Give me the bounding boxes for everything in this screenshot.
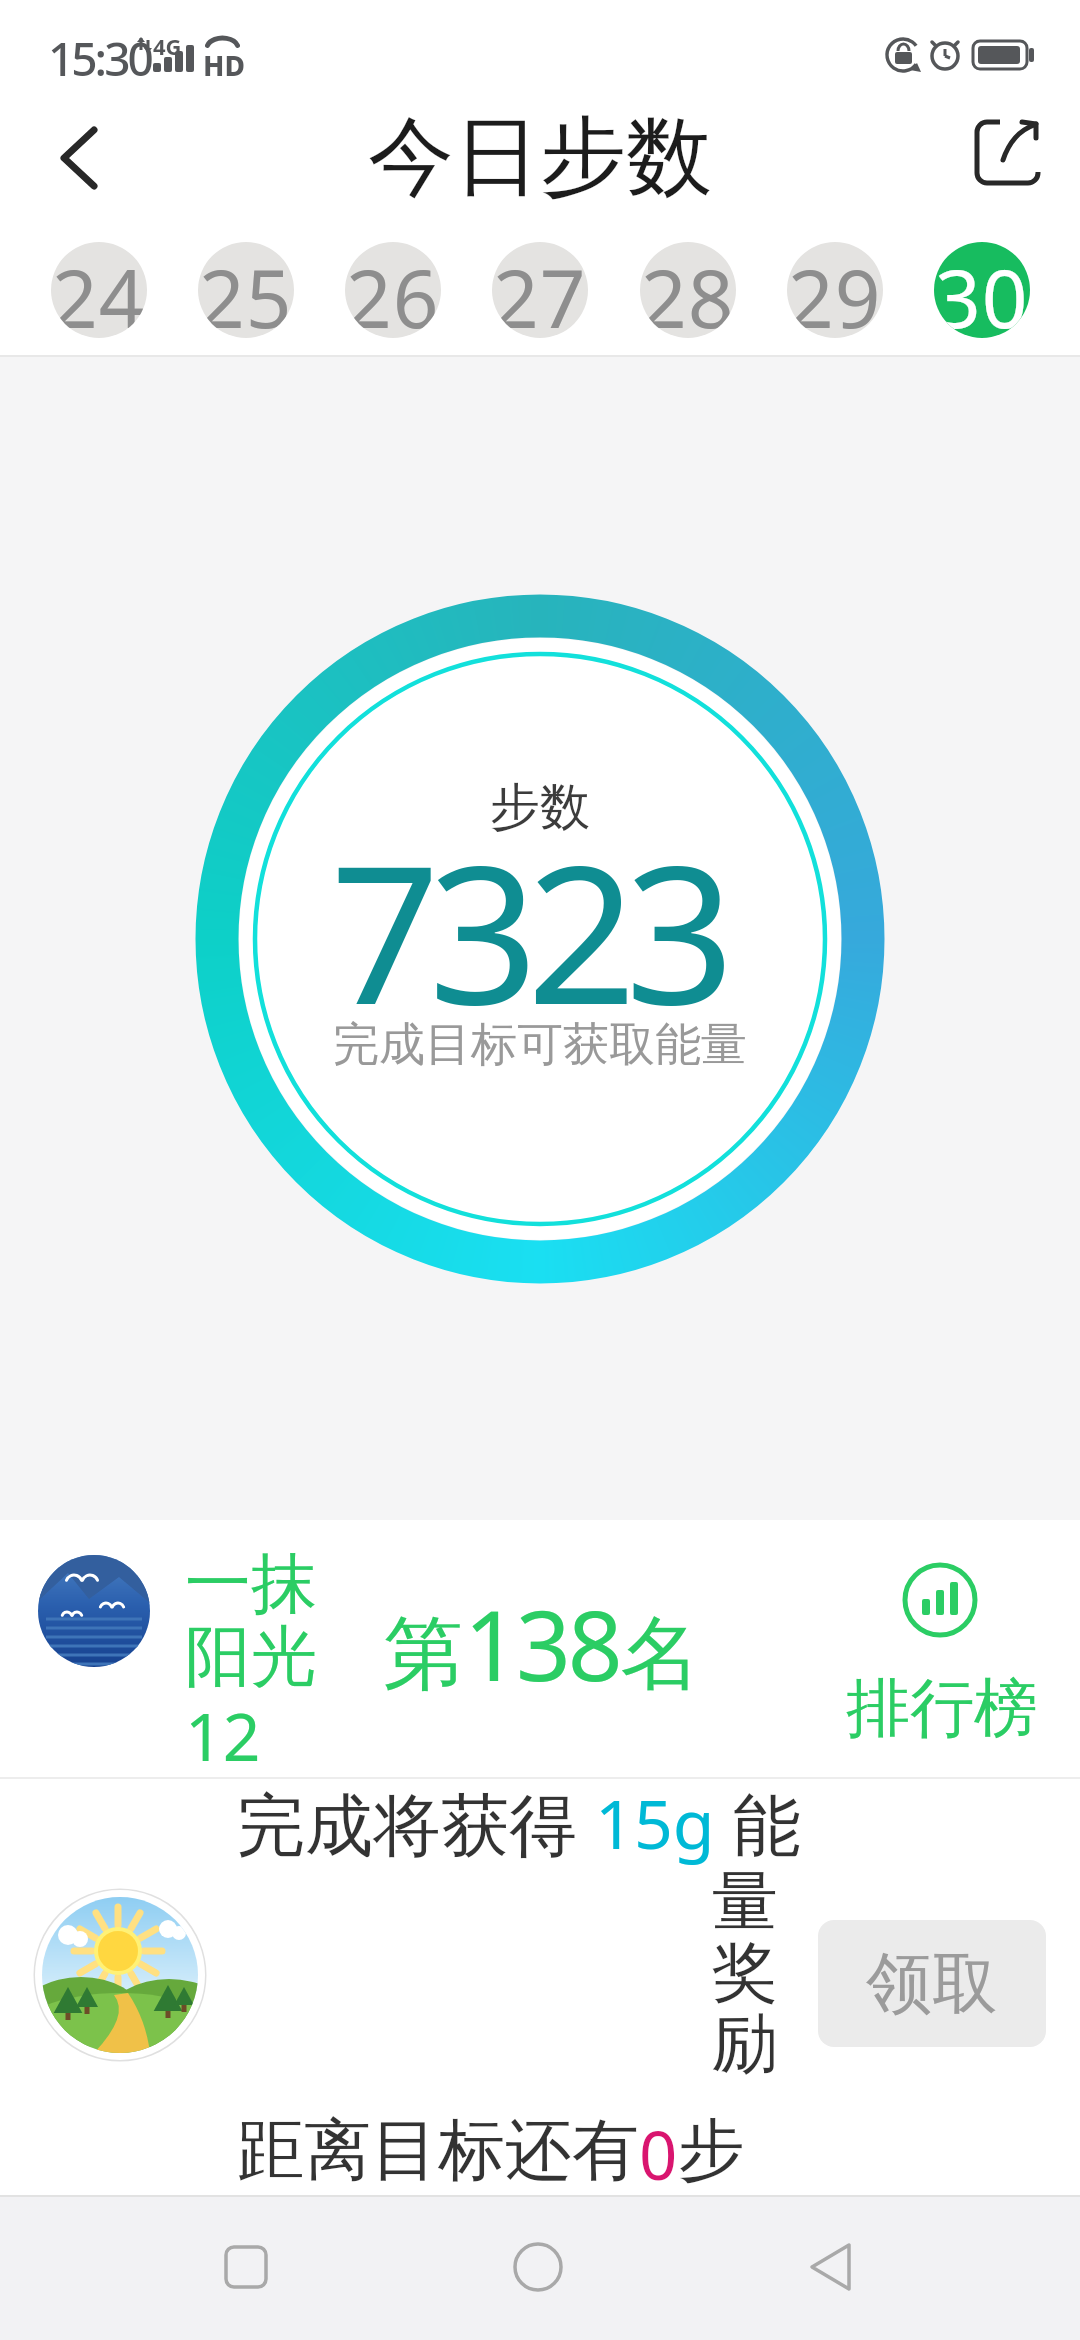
staticText: 第 (383, 1604, 464, 1705)
button[interactable]: 25 (198, 242, 294, 338)
staticText: 励 (712, 2002, 778, 2070)
button[interactable] (750, 2207, 910, 2327)
staticText: 今日步数 (368, 103, 712, 198)
button[interactable] (166, 2207, 326, 2327)
staticText: 排行榜 (846, 1668, 1038, 1730)
staticText: 29 (788, 242, 882, 338)
button[interactable] (458, 2207, 618, 2327)
button[interactable]: 24 (51, 242, 147, 338)
staticText: 26 (346, 242, 440, 338)
staticText: 30 (935, 242, 1029, 338)
staticText: 量 (712, 1860, 778, 1928)
button[interactable]: 27 (492, 242, 588, 338)
staticText: 15:30 (48, 27, 151, 77)
button[interactable]: 29 (787, 242, 883, 338)
staticText: 步数 (490, 776, 590, 839)
staticText: 领取 (866, 1942, 998, 2025)
staticText: 28 (641, 242, 735, 338)
staticText: 27 (493, 242, 587, 338)
staticText: 0 (639, 2108, 678, 2176)
staticText: 138 (464, 1578, 620, 1709)
button[interactable]: 28 (640, 242, 736, 338)
staticText: 奖 (712, 1931, 778, 1999)
staticText: 步 (678, 2108, 745, 2176)
staticText: 25 (199, 242, 293, 338)
staticText: 完成将获得 (237, 1776, 595, 1844)
staticText: 完成目标可获取能量 (333, 1016, 747, 1074)
staticText: 24 (52, 242, 146, 338)
staticText: 能 (715, 1776, 801, 1844)
button[interactable]: 30 (934, 242, 1030, 338)
button[interactable] (0, 1522, 800, 1777)
staticText: 12 (185, 1690, 261, 1750)
staticText: 一抹 (185, 1542, 317, 1602)
staticText: 4G (153, 31, 182, 53)
staticText: 距离目标还有 (237, 2108, 639, 2176)
button[interactable] (40, 115, 120, 200)
button[interactable]: 排行榜 (842, 1668, 1042, 1730)
button[interactable] (960, 105, 1055, 200)
button[interactable]: 领取 (818, 1920, 1046, 2047)
button[interactable]: 26 (345, 242, 441, 338)
staticText: 名 (620, 1604, 701, 1705)
staticText: 阳光 (185, 1615, 317, 1675)
staticText: HD (203, 46, 245, 74)
staticText: 15g (595, 1776, 715, 1844)
staticText: 7323 (330, 799, 724, 981)
